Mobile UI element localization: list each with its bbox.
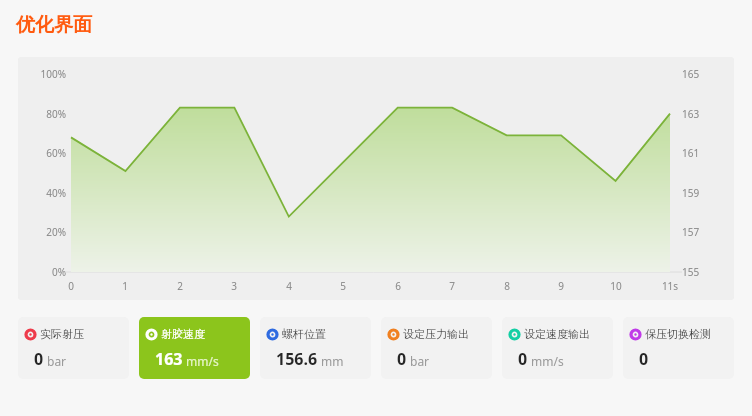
staticText: 8 <box>487 279 527 293</box>
button[interactable]: 保压切换检测 <box>623 317 734 379</box>
staticText: bar <box>47 353 67 369</box>
button[interactable]: 设定压力输出 <box>381 317 492 379</box>
staticText: 156.6 <box>276 348 318 370</box>
staticText: 11s <box>650 279 690 293</box>
staticText: 6 <box>378 279 418 293</box>
staticText: 100% <box>24 67 66 81</box>
staticText: 4 <box>269 279 309 293</box>
staticText: 0 <box>397 348 407 370</box>
button[interactable]: 设定速度输出 <box>502 317 613 379</box>
staticText: 159 <box>682 186 700 200</box>
staticText: 射胶速度 <box>161 327 205 341</box>
staticText: 螺杆位置 <box>282 327 326 341</box>
staticText: 实际射压 <box>40 327 84 341</box>
staticText: 80% <box>24 107 66 121</box>
staticText: mm/s <box>531 353 564 369</box>
staticText: 163 <box>682 107 700 121</box>
staticText: 9 <box>541 279 581 293</box>
staticText: 161 <box>682 146 700 160</box>
staticText: 3 <box>214 279 254 293</box>
staticText: 163 <box>155 348 183 370</box>
staticText: 60% <box>24 146 66 160</box>
staticText: 40% <box>24 186 66 200</box>
staticText: 157 <box>682 225 700 239</box>
button[interactable]: 射胶速度 <box>139 317 250 379</box>
staticText: 155 <box>682 265 700 279</box>
staticText: 保压切换检测 <box>645 327 711 341</box>
button[interactable]: 实际射压 <box>18 317 129 379</box>
staticText: 2 <box>160 279 200 293</box>
staticText: 0 <box>639 348 649 370</box>
staticText: 165 <box>682 67 700 81</box>
staticText: 7 <box>432 279 472 293</box>
staticText: 0 <box>34 348 44 370</box>
staticText: 20% <box>24 225 66 239</box>
staticText: 设定压力输出 <box>403 327 469 341</box>
staticText: 设定速度输出 <box>524 327 590 341</box>
staticText: 0% <box>24 265 66 279</box>
staticText: 0 <box>518 348 528 370</box>
staticText: bar <box>410 353 430 369</box>
staticText: 0 <box>51 279 91 293</box>
staticText: 10 <box>596 279 636 293</box>
staticText: mm <box>321 353 344 369</box>
staticText: 1 <box>105 279 145 293</box>
staticText: mm/s <box>186 353 219 369</box>
staticText: 5 <box>323 279 363 293</box>
button[interactable]: 螺杆位置 <box>260 317 371 379</box>
staticText: 优化界面 <box>16 13 92 37</box>
